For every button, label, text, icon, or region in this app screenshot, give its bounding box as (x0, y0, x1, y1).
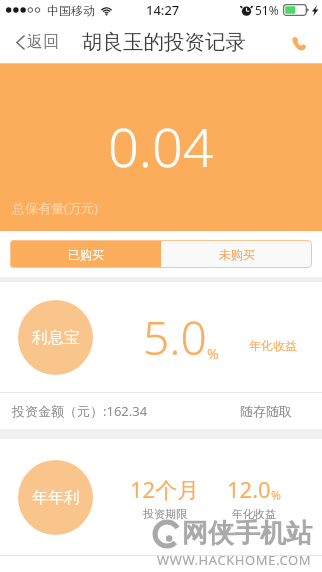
staticText: 胡良玉的投资记录 (82, 29, 246, 55)
staticText: 年化收益 (232, 507, 276, 521)
button[interactable]: 未购买 (161, 240, 312, 268)
staticText: % (271, 487, 281, 503)
staticText: 随存随取 (240, 403, 292, 419)
button[interactable]: 拨打电话 (277, 34, 322, 51)
staticText: 已购买 (68, 247, 104, 262)
staticText: 返回 (27, 32, 59, 52)
button[interactable]: 返回 (0, 24, 69, 60)
staticText: % (207, 344, 219, 363)
staticText: 利息宝 (32, 328, 80, 348)
staticText: 中国移动 (47, 3, 95, 18)
staticText: 0.04 (108, 109, 214, 183)
staticText: 年年利 (32, 488, 80, 508)
staticText: WWW.HACKHOME.COM (157, 551, 312, 569)
staticText: 总保有量(万元) (12, 199, 98, 217)
button[interactable]: 利息宝 (0, 282, 322, 429)
button[interactable]: 年年利 (0, 439, 322, 572)
staticText: 年化收益 (249, 338, 297, 353)
staticText: 投资金额（元）:162.34 (12, 402, 148, 420)
staticText: 未购买 (219, 247, 255, 262)
staticText: 12个月 (130, 474, 200, 504)
staticText: 51% (255, 2, 279, 18)
staticText: 网侠手机站 (182, 517, 312, 550)
staticText: 14:27 (146, 1, 180, 19)
staticText: 12.0 (227, 474, 271, 504)
button[interactable]: 已购买 (10, 240, 161, 268)
staticText: 5.0 (143, 306, 207, 369)
staticText: 投资期限 (143, 507, 187, 521)
